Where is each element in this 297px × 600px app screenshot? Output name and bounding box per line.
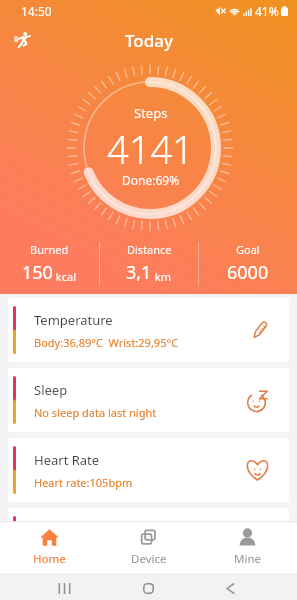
staticText: Done:69% [122,172,180,188]
button[interactable]: Temperature [8,298,289,362]
staticText: 14:50 [21,3,52,19]
button[interactable]: Heart Rate [8,438,289,502]
button[interactable]: Back [211,573,249,600]
staticText: Heart Rate [34,451,100,469]
button[interactable]: Recent apps [45,573,83,600]
staticText: Home [33,551,66,567]
button[interactable]: Mine [198,522,297,573]
staticText: 6000 [227,260,269,285]
staticText: 4141 [107,123,194,175]
staticText: Burned [30,242,69,257]
staticText: 150 [22,260,53,285]
staticText: Today [125,29,173,52]
button[interactable]: Home [129,573,167,600]
button[interactable]: Sleep [8,368,289,432]
staticText: Mine [234,551,261,567]
staticText: Distance [127,242,172,257]
button[interactable]: Activity [6,24,38,56]
staticText: No data [34,545,75,560]
staticText: Goal [236,242,260,257]
staticText: Blood Oxygen [34,521,120,539]
staticText: 41% [255,3,279,19]
staticText: 3,1 [126,260,152,285]
staticText: Steps [134,104,168,122]
staticText: Body:36,89°C Wrist:29,95°C [34,335,179,350]
button[interactable]: Home [0,522,99,573]
staticText: Heart rate:105bpm [34,475,133,490]
staticText: Temperature [34,311,113,329]
staticText: Device [131,551,167,567]
staticText: kcal [53,269,77,284]
button[interactable]: Blood Oxygen [8,508,289,572]
staticText: No sleep data last night [34,405,157,420]
staticText: km [152,269,172,284]
button[interactable]: Device [99,522,198,573]
staticText: Sleep [34,381,68,399]
